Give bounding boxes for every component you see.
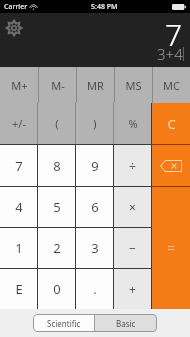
staticText: × (129, 199, 136, 215)
staticText: MR (87, 78, 104, 93)
staticText: . (93, 280, 97, 298)
staticText: M- (51, 78, 65, 93)
button[interactable]: 4 (0, 187, 37, 227)
button[interactable]: E (0, 269, 37, 309)
staticText: Carrier (4, 2, 28, 12)
staticText: +/- (12, 116, 26, 131)
staticText: MS (125, 78, 142, 93)
button[interactable]: ) (76, 103, 113, 144)
button[interactable]: C (152, 103, 190, 144)
button[interactable]: MR (77, 67, 114, 103)
staticText: 1 (15, 239, 23, 257)
button[interactable]: 0 (38, 269, 75, 309)
staticText: − (129, 240, 136, 256)
button[interactable]: 6 (76, 187, 113, 227)
button[interactable]: Backspace (152, 145, 190, 186)
button[interactable]: 8 (38, 145, 75, 186)
staticText: 4 (15, 198, 23, 216)
staticText: + (129, 281, 136, 297)
button[interactable]: − (114, 228, 151, 268)
button[interactable]: Settings (6, 20, 22, 36)
button[interactable]: + (114, 269, 151, 309)
staticText: % (128, 116, 138, 131)
button[interactable]: Basic (95, 314, 157, 332)
button[interactable]: . (76, 269, 113, 309)
button[interactable]: 3 (76, 228, 113, 268)
staticText: 9 (91, 157, 99, 175)
button[interactable]: +/- (0, 103, 37, 144)
staticText: C (167, 115, 176, 133)
button[interactable]: MS (115, 67, 152, 103)
staticText: 6 (91, 198, 99, 216)
staticText: E (15, 280, 23, 298)
button[interactable]: MC (153, 67, 190, 103)
button[interactable]: = (152, 187, 190, 309)
staticText: Basic (116, 318, 136, 329)
staticText: = (167, 239, 175, 257)
staticText: 5 (53, 198, 61, 216)
button[interactable]: M- (39, 67, 76, 103)
button[interactable]: 1 (0, 228, 37, 268)
button[interactable]: ÷ (114, 145, 151, 186)
staticText: 3+4 (157, 44, 183, 64)
staticText: 0 (53, 280, 61, 298)
button[interactable]: Scientific (33, 314, 94, 332)
button[interactable]: 9 (76, 145, 113, 186)
button[interactable]: 7 (0, 145, 37, 186)
staticText: ) (93, 116, 97, 131)
staticText: Scientific (47, 318, 81, 329)
staticText: ( (55, 116, 59, 131)
staticText: M+ (11, 78, 28, 93)
button[interactable]: 2 (38, 228, 75, 268)
staticText: 3 (91, 239, 99, 257)
button[interactable]: M+ (0, 67, 38, 103)
staticText: 8 (53, 157, 61, 175)
staticText: 7 (15, 157, 23, 175)
button[interactable]: % (114, 103, 151, 144)
button[interactable]: × (114, 187, 151, 227)
staticText: ÷ (129, 158, 136, 174)
staticText: MC (163, 78, 180, 93)
staticText: 2 (53, 239, 61, 257)
staticText: 5:48 PM (91, 2, 118, 12)
button[interactable]: 5 (38, 187, 75, 227)
staticText: 7 (165, 14, 183, 55)
button[interactable]: ( (38, 103, 75, 144)
